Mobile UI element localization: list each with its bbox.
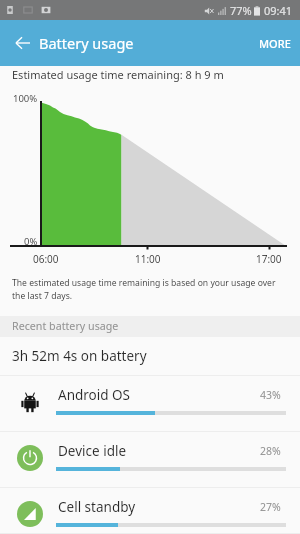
staticText: Android OS: [58, 386, 130, 404]
staticText: 27%: [260, 500, 281, 514]
staticText: 77%: [230, 3, 252, 18]
staticText: Cell standby: [58, 498, 136, 516]
staticText: 3h 52m 4s on battery: [12, 347, 147, 365]
staticText: Recent battery usage: [12, 319, 119, 334]
button[interactable]: MORE: [246, 20, 300, 66]
staticText: 09:41: [264, 3, 293, 18]
staticText: 06:00: [33, 252, 59, 266]
staticText: The estimated usage time remaining is ba…: [12, 277, 284, 302]
staticText: 43%: [260, 388, 281, 402]
staticText: MORE: [259, 36, 291, 51]
staticText: 17:00: [256, 252, 282, 266]
button[interactable]: Android OS: [0, 376, 300, 432]
staticText: 28%: [260, 444, 281, 458]
staticText: 0%: [24, 235, 38, 248]
button[interactable]: Navigate up: [0, 20, 46, 66]
staticText: 11:00: [135, 252, 161, 266]
button[interactable]: Cell standby: [0, 488, 300, 534]
staticText: Device idle: [58, 442, 127, 460]
staticText: 100%: [13, 92, 38, 105]
staticText: Estimated usage time remaining: 8 h 9 m: [12, 67, 224, 82]
staticText: Battery usage: [39, 33, 134, 53]
button[interactable]: Device idle: [0, 432, 300, 488]
